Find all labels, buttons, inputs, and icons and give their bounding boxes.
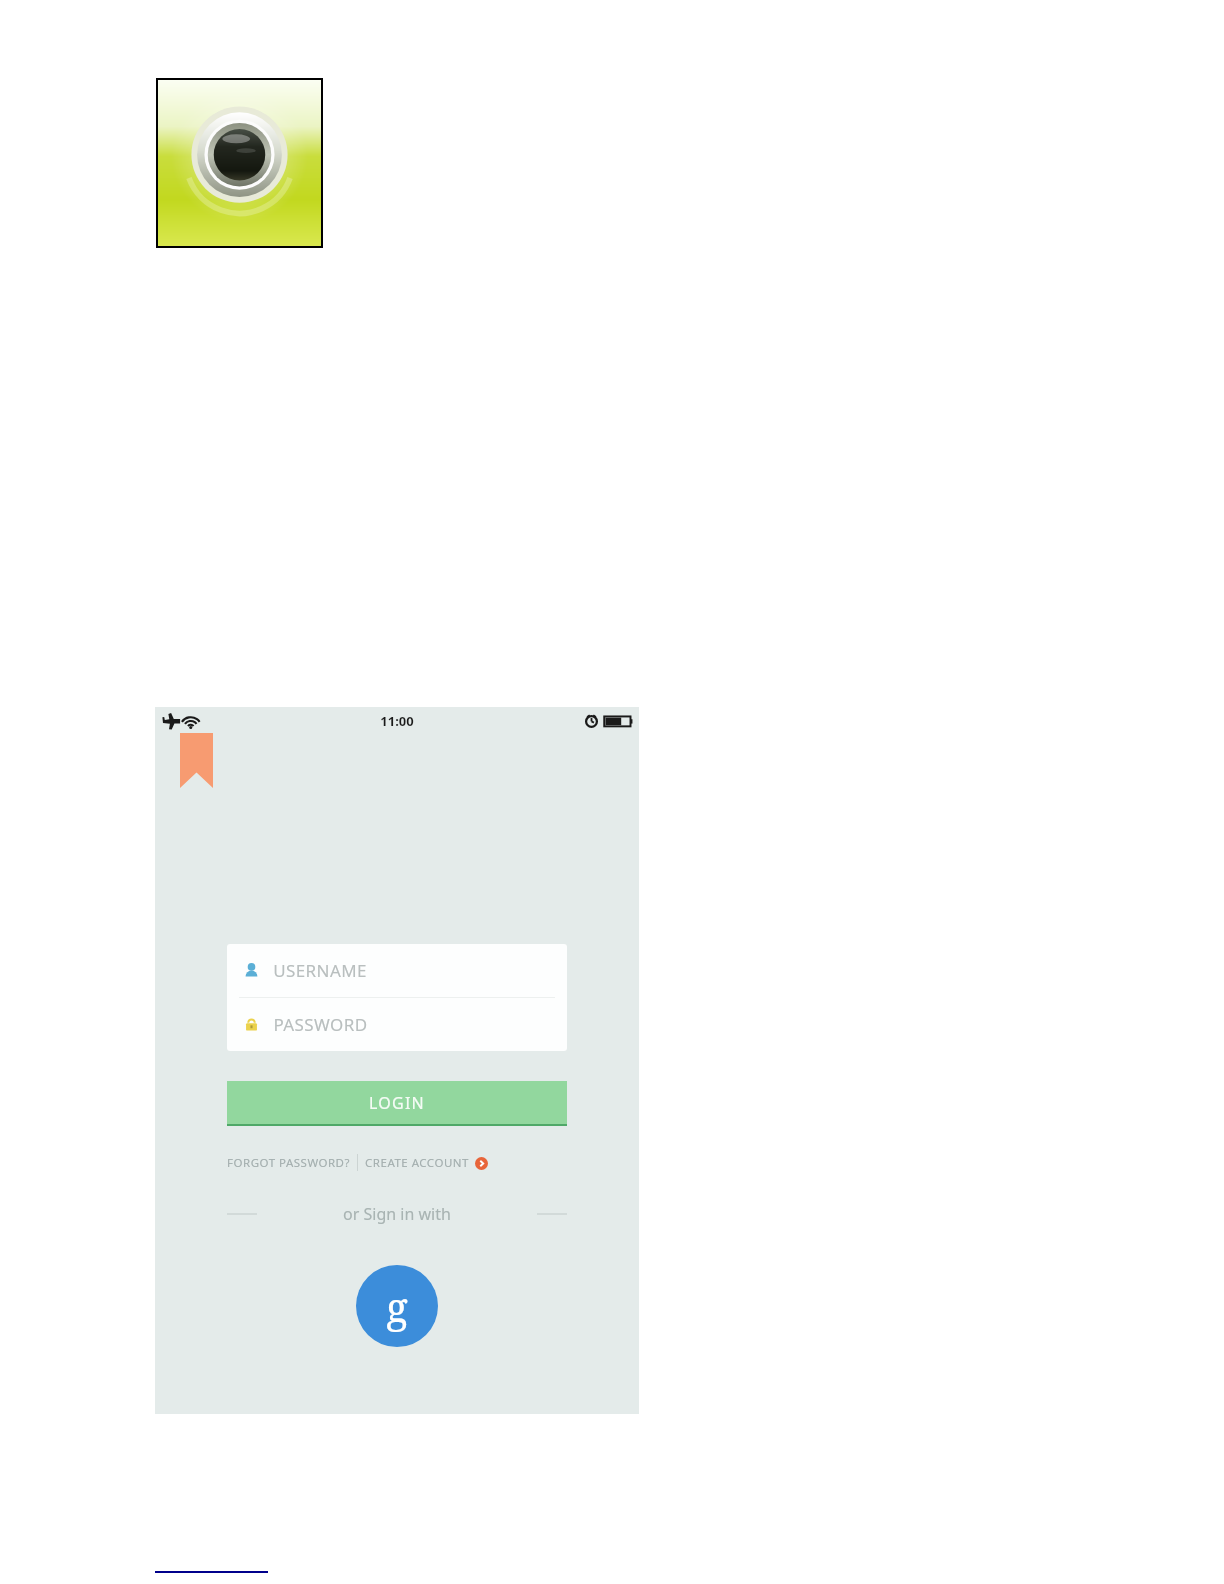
staticText: CREATE ACCOUNT bbox=[365, 1155, 469, 1171]
staticText: or Sign in with bbox=[343, 1203, 451, 1225]
button[interactable]: PASSWORD bbox=[227, 998, 567, 1051]
button[interactable]: CREATE ACCOUNT bbox=[358, 1155, 488, 1171]
staticText: FORGOT PASSWORD? bbox=[227, 1155, 350, 1171]
staticText: LOGIN bbox=[369, 1092, 425, 1114]
staticText: USERNAME bbox=[273, 959, 367, 982]
button[interactable]: USERNAME bbox=[227, 944, 567, 997]
staticText: g bbox=[386, 1279, 408, 1333]
staticText: 11:00 bbox=[380, 712, 414, 730]
staticText: PASSWORD bbox=[273, 1013, 368, 1036]
button[interactable]: FORGOT PASSWORD? bbox=[227, 1155, 357, 1171]
button[interactable]: LOGIN bbox=[227, 1081, 567, 1126]
button[interactable]: Sign in with Google bbox=[356, 1265, 438, 1347]
